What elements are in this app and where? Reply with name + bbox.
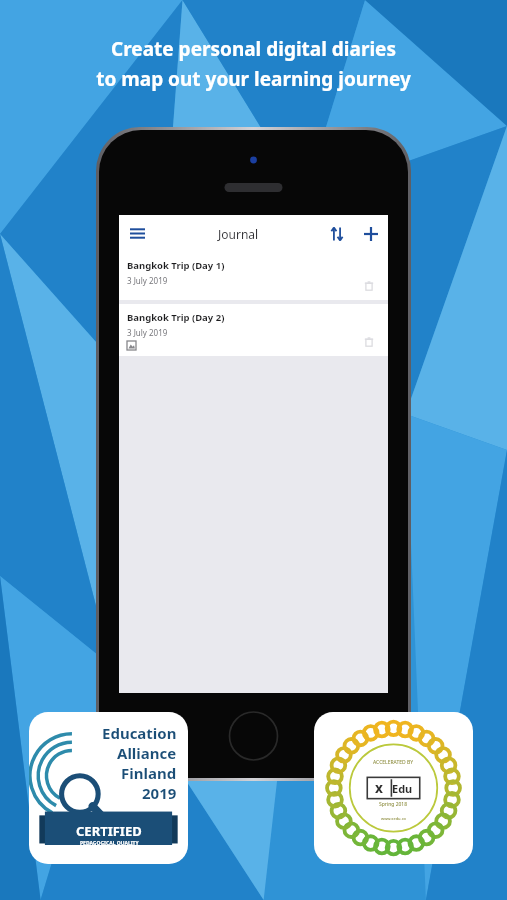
- staticText: 2019: [142, 783, 177, 803]
- staticText: Bangkok Trip (Day 2): [127, 311, 225, 324]
- staticText: ACCELERATED BY: [373, 759, 414, 766]
- staticText: Edu: [392, 781, 413, 796]
- staticText: X: [375, 781, 383, 796]
- button[interactable]: Bangkok Trip (Day 1): [119, 252, 388, 300]
- staticText: Bangkok Trip (Day 1): [127, 259, 225, 272]
- staticText: Create personal digital diaries: [111, 36, 396, 62]
- button[interactable]: Sort: [320, 217, 354, 251]
- staticText: Spring 2018: [379, 801, 408, 808]
- staticText: www.xedu.co: [381, 816, 406, 821]
- staticText: to map out your learning journey: [96, 66, 411, 92]
- button[interactable]: Delete: [360, 277, 378, 295]
- button[interactable]: Delete: [360, 333, 378, 351]
- staticText: PEDAGOGICAL QUALITY: [80, 840, 139, 847]
- staticText: CERTIFIED: [76, 822, 142, 840]
- staticText: Education: [102, 723, 177, 743]
- staticText: Finland: [121, 763, 177, 783]
- staticText: 3 July 2019: [127, 327, 168, 338]
- staticText: Alliance: [117, 743, 177, 763]
- staticText: 3 July 2019: [127, 275, 168, 286]
- button[interactable]: Bangkok Trip (Day 2): [119, 304, 388, 356]
- staticText: Journal: [218, 226, 259, 242]
- button[interactable]: Add: [354, 217, 388, 251]
- button[interactable]: Menu: [119, 215, 156, 252]
